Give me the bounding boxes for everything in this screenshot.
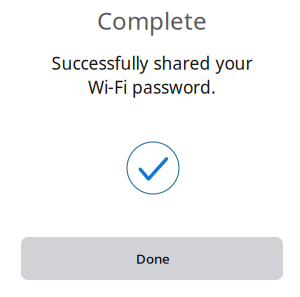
button[interactable]: Done (21, 237, 283, 280)
staticText: Successfully shared your (51, 51, 252, 74)
staticText: Complete (97, 5, 207, 36)
staticText: Done (136, 250, 170, 267)
staticText: Wi-Fi password. (88, 75, 216, 98)
